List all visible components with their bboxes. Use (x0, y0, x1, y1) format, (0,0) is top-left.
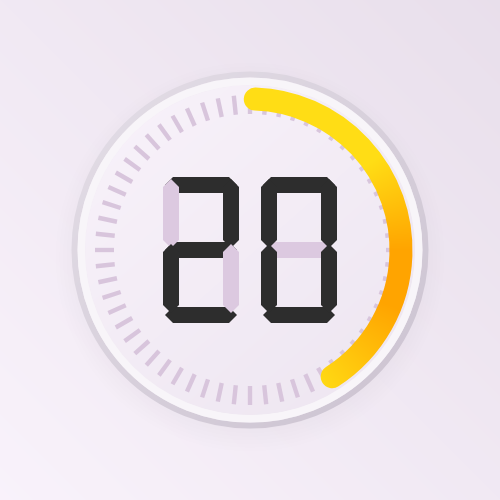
button[interactable]: Timer, 20 minutes remaining (0, 0, 500, 500)
